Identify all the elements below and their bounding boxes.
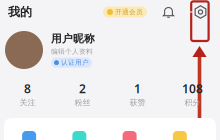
button[interactable]: 8 xyxy=(0,81,55,107)
staticText: 认证用户 xyxy=(61,59,89,67)
staticText: 开通会员 xyxy=(115,8,143,16)
button[interactable]: 我的钱包 xyxy=(104,131,155,140)
staticText: 积分 xyxy=(184,98,200,107)
button[interactable]: 1 xyxy=(110,81,165,107)
button[interactable]: 开通会员 xyxy=(103,6,147,18)
staticText: 8 xyxy=(24,81,31,96)
staticText: 粉丝 xyxy=(74,98,90,107)
staticText: 编辑个人资料 xyxy=(51,47,93,56)
staticText: 获赞 xyxy=(129,98,145,107)
staticText: 关注 xyxy=(19,98,35,107)
button[interactable]: 优惠券 xyxy=(155,131,205,140)
button[interactable]: 108 xyxy=(165,81,220,107)
staticText: 用户昵称 xyxy=(51,32,95,45)
staticText: 108 xyxy=(182,81,203,96)
button[interactable]: 我的收藏 xyxy=(54,131,104,140)
staticText: 2 xyxy=(79,81,86,96)
staticText: 1 xyxy=(134,81,141,96)
button[interactable]: Notifications xyxy=(163,6,174,18)
staticText: 我的 xyxy=(8,5,32,19)
button[interactable]: 我的订单 xyxy=(4,131,54,140)
button[interactable]: Settings xyxy=(194,5,207,18)
button[interactable]: 2 xyxy=(55,81,110,107)
